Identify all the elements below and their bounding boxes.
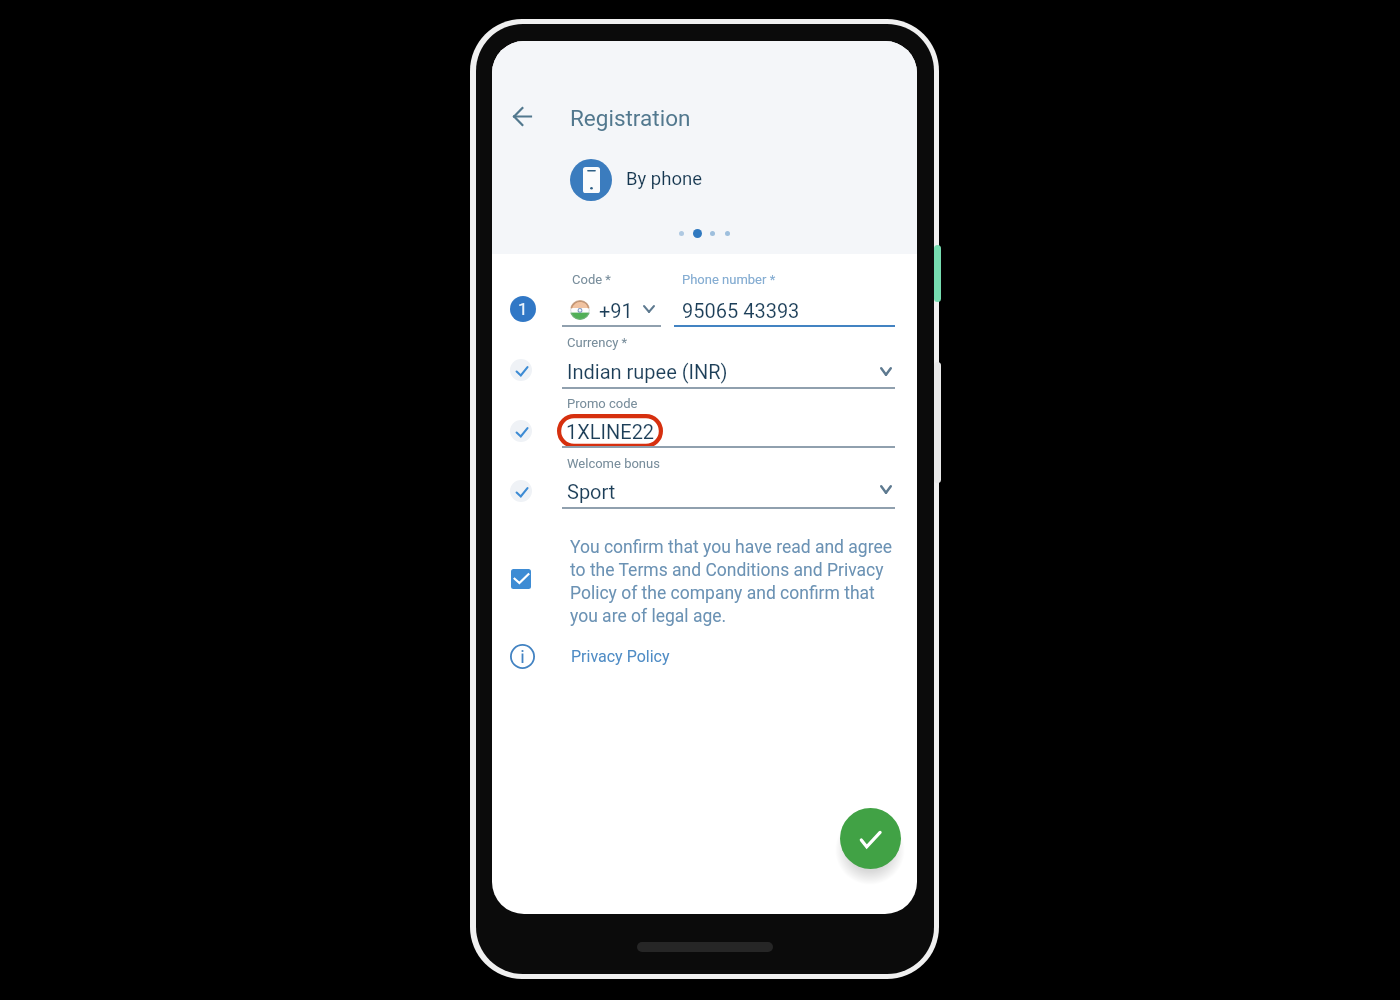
button[interactable]: Welcome bonus, Sport [562,450,895,508]
staticText: 1XLINE22 [566,420,655,443]
button[interactable]: Back [500,94,544,139]
staticText: Registration [570,105,691,131]
button[interactable]: Confirm registration [840,808,901,869]
staticText: 1 [518,299,528,319]
staticText: Privacy Policy [571,647,670,666]
staticText: Phone number * [682,272,776,287]
staticText: 95065 43393 [682,299,800,322]
button[interactable]: Country code, +91 [561,267,662,327]
staticText: Promo code [567,396,638,411]
staticText: +91 [599,299,633,322]
staticText: You confirm that you have read and agree… [570,537,898,626]
button[interactable]: Promo code, 1XLINE22 [562,390,895,447]
button[interactable]: Privacy policy information [502,634,543,678]
staticText: Currency * [567,335,628,350]
button[interactable]: Phone number, 95065 43393 [674,267,895,327]
staticText: Indian rupee (INR) [567,360,728,383]
staticText: By phone [626,168,703,190]
staticText: Sport [567,480,616,503]
button[interactable]: Currency, Indian rupee (INR) [562,330,895,388]
button[interactable]: Privacy Policy [565,641,676,672]
staticText: Code * [572,272,611,287]
button[interactable]: Agree to terms and conditions [511,569,531,589]
staticText: Welcome bonus [567,456,660,471]
